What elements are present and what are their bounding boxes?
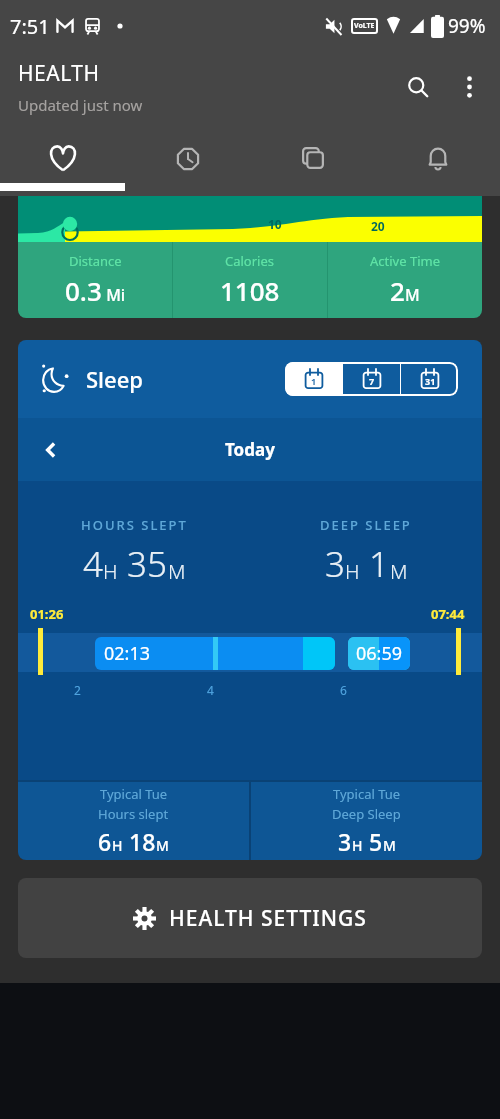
staticText: Active Time (370, 252, 440, 270)
staticText: 18 (123, 826, 156, 857)
staticText: Typical Tue (100, 785, 168, 803)
staticText: 6 (98, 826, 112, 857)
staticText: H (352, 836, 363, 855)
button[interactable] (0, 122, 125, 196)
staticText: 06:59 (356, 641, 403, 666)
staticText: Sleep (86, 364, 143, 394)
staticText: M (168, 558, 186, 585)
staticText: 2 (74, 682, 81, 698)
staticText: Hours slept (98, 805, 169, 823)
button[interactable]: 02:13 (95, 637, 335, 670)
button[interactable]: HEALTH SETTINGS (18, 878, 482, 958)
staticText: 31 (425, 375, 436, 387)
staticText: 7 (369, 375, 375, 387)
button[interactable]: Distance (18, 242, 172, 318)
button[interactable] (375, 122, 500, 196)
button[interactable] (125, 122, 250, 196)
staticText: 01:26 (30, 605, 64, 623)
staticText: 99% (448, 13, 486, 39)
staticText: 02:13 (104, 641, 151, 666)
staticText: Typical Tue (333, 785, 401, 803)
staticText: Today (225, 438, 275, 461)
staticText: H (103, 558, 118, 585)
button[interactable] (250, 122, 375, 196)
staticText: M (156, 836, 169, 855)
staticText: 10 (268, 216, 282, 232)
staticText: 07:44 (431, 605, 465, 623)
staticText: Calories (225, 252, 275, 270)
staticText: Distance (69, 252, 122, 270)
staticText: 35 (118, 540, 168, 588)
staticText: HEALTH SETTINGS (169, 904, 367, 933)
staticText: M (405, 284, 420, 306)
staticText: 6 (340, 682, 347, 698)
button[interactable] (402, 71, 434, 103)
staticText: 4 (207, 682, 214, 698)
button[interactable]: Active Time (328, 242, 482, 318)
staticText: 7:51 (10, 13, 50, 40)
staticText: M (383, 836, 396, 855)
staticText: 20 (371, 218, 385, 234)
staticText: HEALTH (18, 59, 100, 88)
button[interactable]: 06:59 (348, 637, 410, 670)
staticText: Deep Sleep (332, 805, 401, 823)
staticText: HOURS SLEPT (81, 516, 188, 534)
staticText: DEEP SLEEP (320, 516, 412, 534)
staticText: M (390, 558, 408, 585)
staticText: 4 (83, 540, 103, 588)
staticText: 1 (360, 540, 390, 588)
staticText: 1108 (220, 273, 280, 308)
button[interactable] (456, 74, 482, 100)
button[interactable]: 1 (285, 362, 342, 396)
staticText: H (112, 836, 123, 855)
button[interactable]: Calories (173, 242, 327, 318)
button[interactable] (36, 435, 66, 465)
staticText: 3 (338, 826, 352, 857)
button[interactable]: Typical Tue (18, 782, 249, 860)
button[interactable]: 7 (343, 362, 400, 396)
staticText: 0.3 (65, 273, 102, 308)
button[interactable]: 31 (401, 362, 458, 396)
staticText: 2 (390, 273, 405, 308)
staticText: H (345, 558, 360, 585)
staticText: VoLTE (354, 21, 375, 31)
staticText: 3 (325, 540, 345, 588)
button[interactable]: Typical Tue (251, 782, 482, 860)
staticText: 1 (311, 375, 317, 387)
staticText: 5 (363, 826, 383, 857)
staticText: Updated just now (18, 95, 143, 115)
staticText: Mi (102, 284, 126, 306)
